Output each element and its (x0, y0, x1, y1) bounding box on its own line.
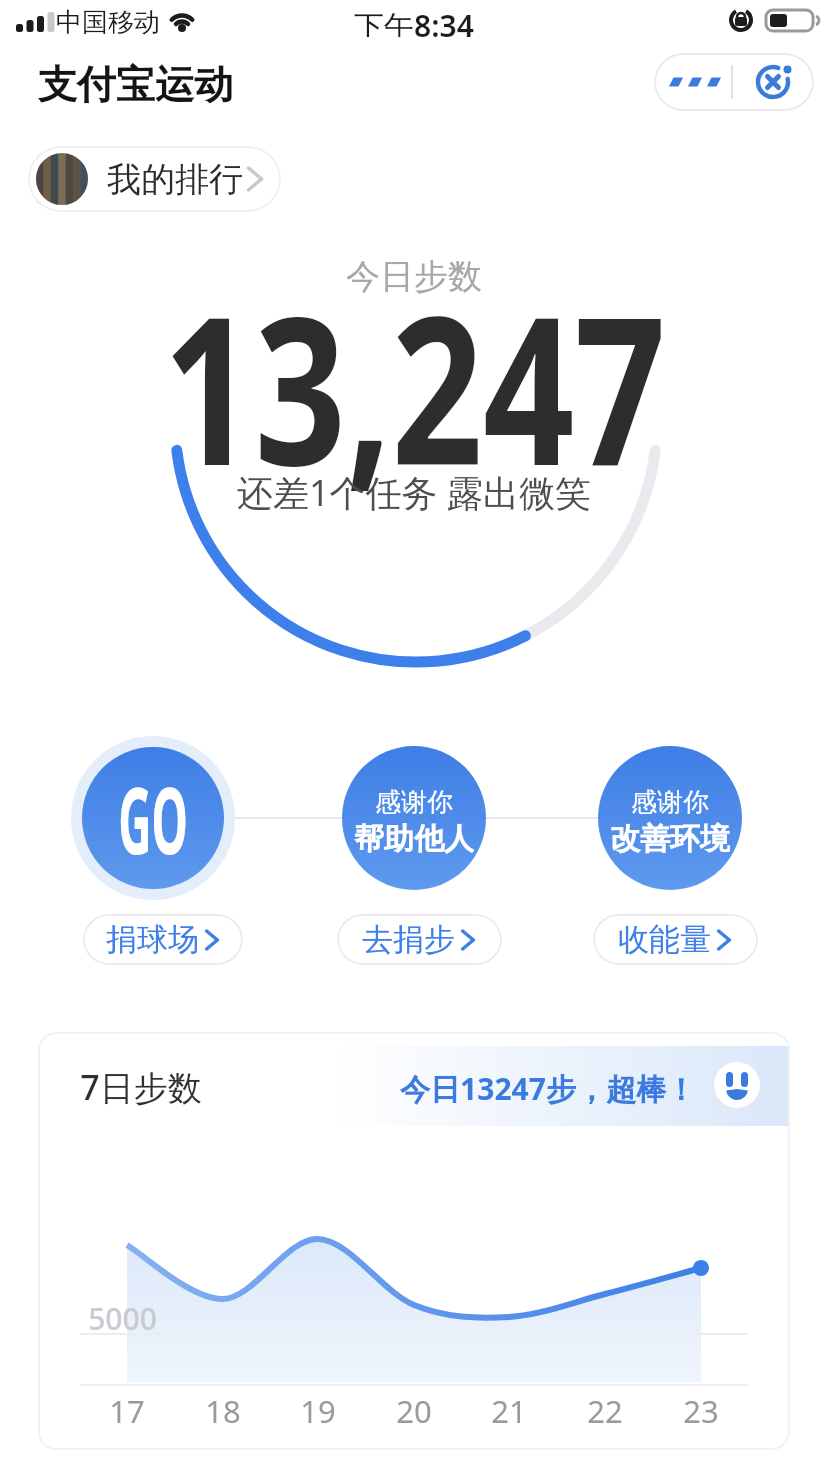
staticText: 还差1个任务 露出微笑 (237, 468, 591, 512)
staticText: 5000 (88, 1298, 157, 1334)
button[interactable] (342, 746, 486, 890)
staticText: 19 (300, 1390, 336, 1430)
staticText: 中国移动 (56, 6, 160, 36)
button[interactable] (328, 1046, 790, 1126)
staticText: 7日步数 (80, 1064, 202, 1108)
button[interactable] (598, 746, 742, 890)
staticText: 20 (396, 1390, 432, 1430)
staticText: 帮助他人 (354, 820, 474, 856)
button[interactable] (654, 53, 814, 111)
button[interactable]: 我的排行 (28, 146, 281, 212)
staticText: 21 (491, 1390, 527, 1430)
staticText: 13,247 (163, 246, 666, 525)
staticText: 捐球场 (106, 920, 199, 959)
staticText: 去捐步 (362, 920, 455, 959)
staticText: GO (118, 756, 188, 881)
staticText: 下午8:34 (354, 5, 474, 37)
staticText: 今日13247步，超棒！ (400, 1068, 696, 1109)
button[interactable]: 收能量 (593, 914, 758, 965)
staticText: 17 (109, 1390, 145, 1430)
staticText: 感谢你 (631, 786, 709, 814)
staticText: 23 (683, 1390, 719, 1430)
staticText: 我的排行 (107, 158, 243, 201)
button[interactable]: 捐球场 (83, 914, 243, 965)
staticText: 今日步数 (346, 255, 482, 298)
staticText: 18 (205, 1390, 241, 1430)
staticText: 收能量 (618, 920, 711, 959)
button[interactable]: GO (82, 747, 224, 889)
staticText: 支付宝运动 (38, 60, 233, 109)
staticText: 22 (587, 1390, 623, 1430)
staticText: 改善环境 (610, 820, 730, 856)
button[interactable]: 去捐步 (337, 914, 502, 965)
staticText: 感谢你 (375, 786, 453, 814)
